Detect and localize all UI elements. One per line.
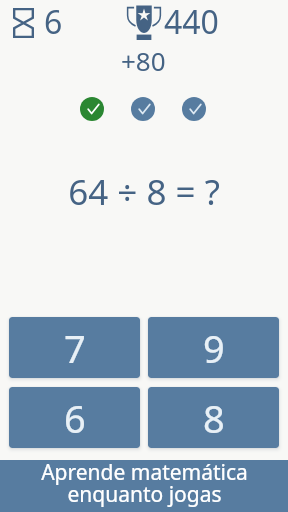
button[interactable]: 7 (9, 317, 140, 378)
staticText: 64 ÷ 8 = ? (0, 168, 288, 216)
staticText: 6 (44, 0, 63, 44)
staticText: 7 (64, 322, 86, 374)
staticText: 8 (203, 392, 225, 444)
staticText: 440 (164, 0, 219, 44)
staticText: +80 (121, 43, 166, 78)
button[interactable]: 9 (148, 317, 279, 378)
staticText: 6 (64, 392, 86, 444)
staticText: Aprende matemática enquanto jogas (41, 458, 248, 508)
staticText: 9 (203, 322, 225, 374)
button[interactable]: Aprende matemática enquanto jogas (0, 460, 288, 512)
button[interactable]: 6 (9, 387, 140, 448)
button[interactable]: 8 (148, 387, 279, 448)
